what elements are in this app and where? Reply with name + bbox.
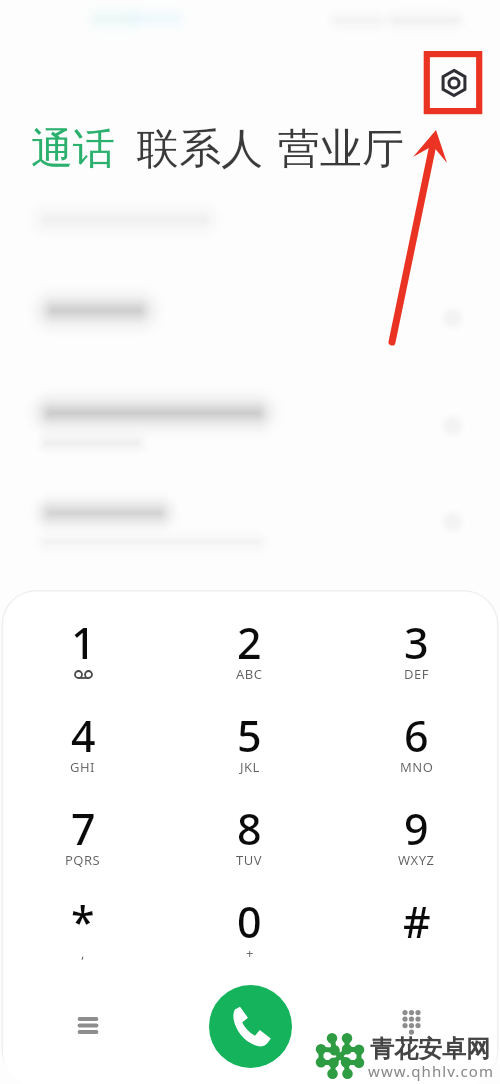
- staticText: +: [246, 944, 254, 962]
- button[interactable]: 4: [0, 700, 166, 793]
- staticText: GHI: [70, 758, 96, 776]
- staticText: ,: [81, 944, 85, 962]
- staticText: JKL: [240, 758, 260, 776]
- button[interactable]: Call: [209, 985, 292, 1068]
- staticText: 2: [237, 613, 262, 672]
- staticText: 1: [71, 613, 96, 672]
- button[interactable]: 9: [333, 793, 500, 886]
- staticText: 0: [237, 892, 262, 951]
- button[interactable]: *: [0, 886, 166, 979]
- button[interactable]: 1: [0, 607, 166, 700]
- button[interactable]: Dialpad: [387, 998, 435, 1046]
- staticText: MNO: [400, 758, 434, 776]
- staticText: ABC: [236, 665, 263, 683]
- staticText: WXYZ: [398, 851, 435, 869]
- button[interactable]: 联系人: [137, 123, 263, 176]
- button[interactable]: 0: [166, 886, 333, 979]
- staticText: PQRS: [65, 851, 101, 869]
- staticText: 通话: [31, 123, 115, 176]
- button[interactable]: 8: [166, 793, 333, 886]
- staticText: 青花安卓网: [370, 1034, 490, 1064]
- staticText: www.qhhlv.com: [368, 1061, 495, 1081]
- staticText: 9: [404, 799, 429, 858]
- staticText: 6: [404, 706, 429, 765]
- button[interactable]: Settings: [431, 60, 477, 106]
- staticText: 5: [237, 706, 262, 765]
- staticText: 7: [71, 799, 96, 858]
- button[interactable]: #: [333, 886, 500, 979]
- staticText: 联系人: [137, 123, 263, 176]
- button[interactable]: 7: [0, 793, 166, 886]
- staticText: DEF: [404, 665, 429, 683]
- staticText: 3: [404, 613, 429, 672]
- staticText: 营业厅: [278, 123, 404, 176]
- staticText: #: [403, 892, 431, 951]
- button[interactable]: 3: [333, 607, 500, 700]
- button[interactable]: 2: [166, 607, 333, 700]
- staticText: *: [71, 892, 95, 951]
- staticText: 4: [71, 706, 96, 765]
- button[interactable]: 5: [166, 700, 333, 793]
- staticText: 8: [237, 799, 262, 858]
- button[interactable]: 营业厅: [278, 123, 404, 176]
- button[interactable]: Call log menu: [64, 1001, 112, 1049]
- button[interactable]: 通话: [31, 123, 115, 176]
- staticText: TUV: [236, 851, 263, 869]
- button[interactable]: 6: [333, 700, 500, 793]
